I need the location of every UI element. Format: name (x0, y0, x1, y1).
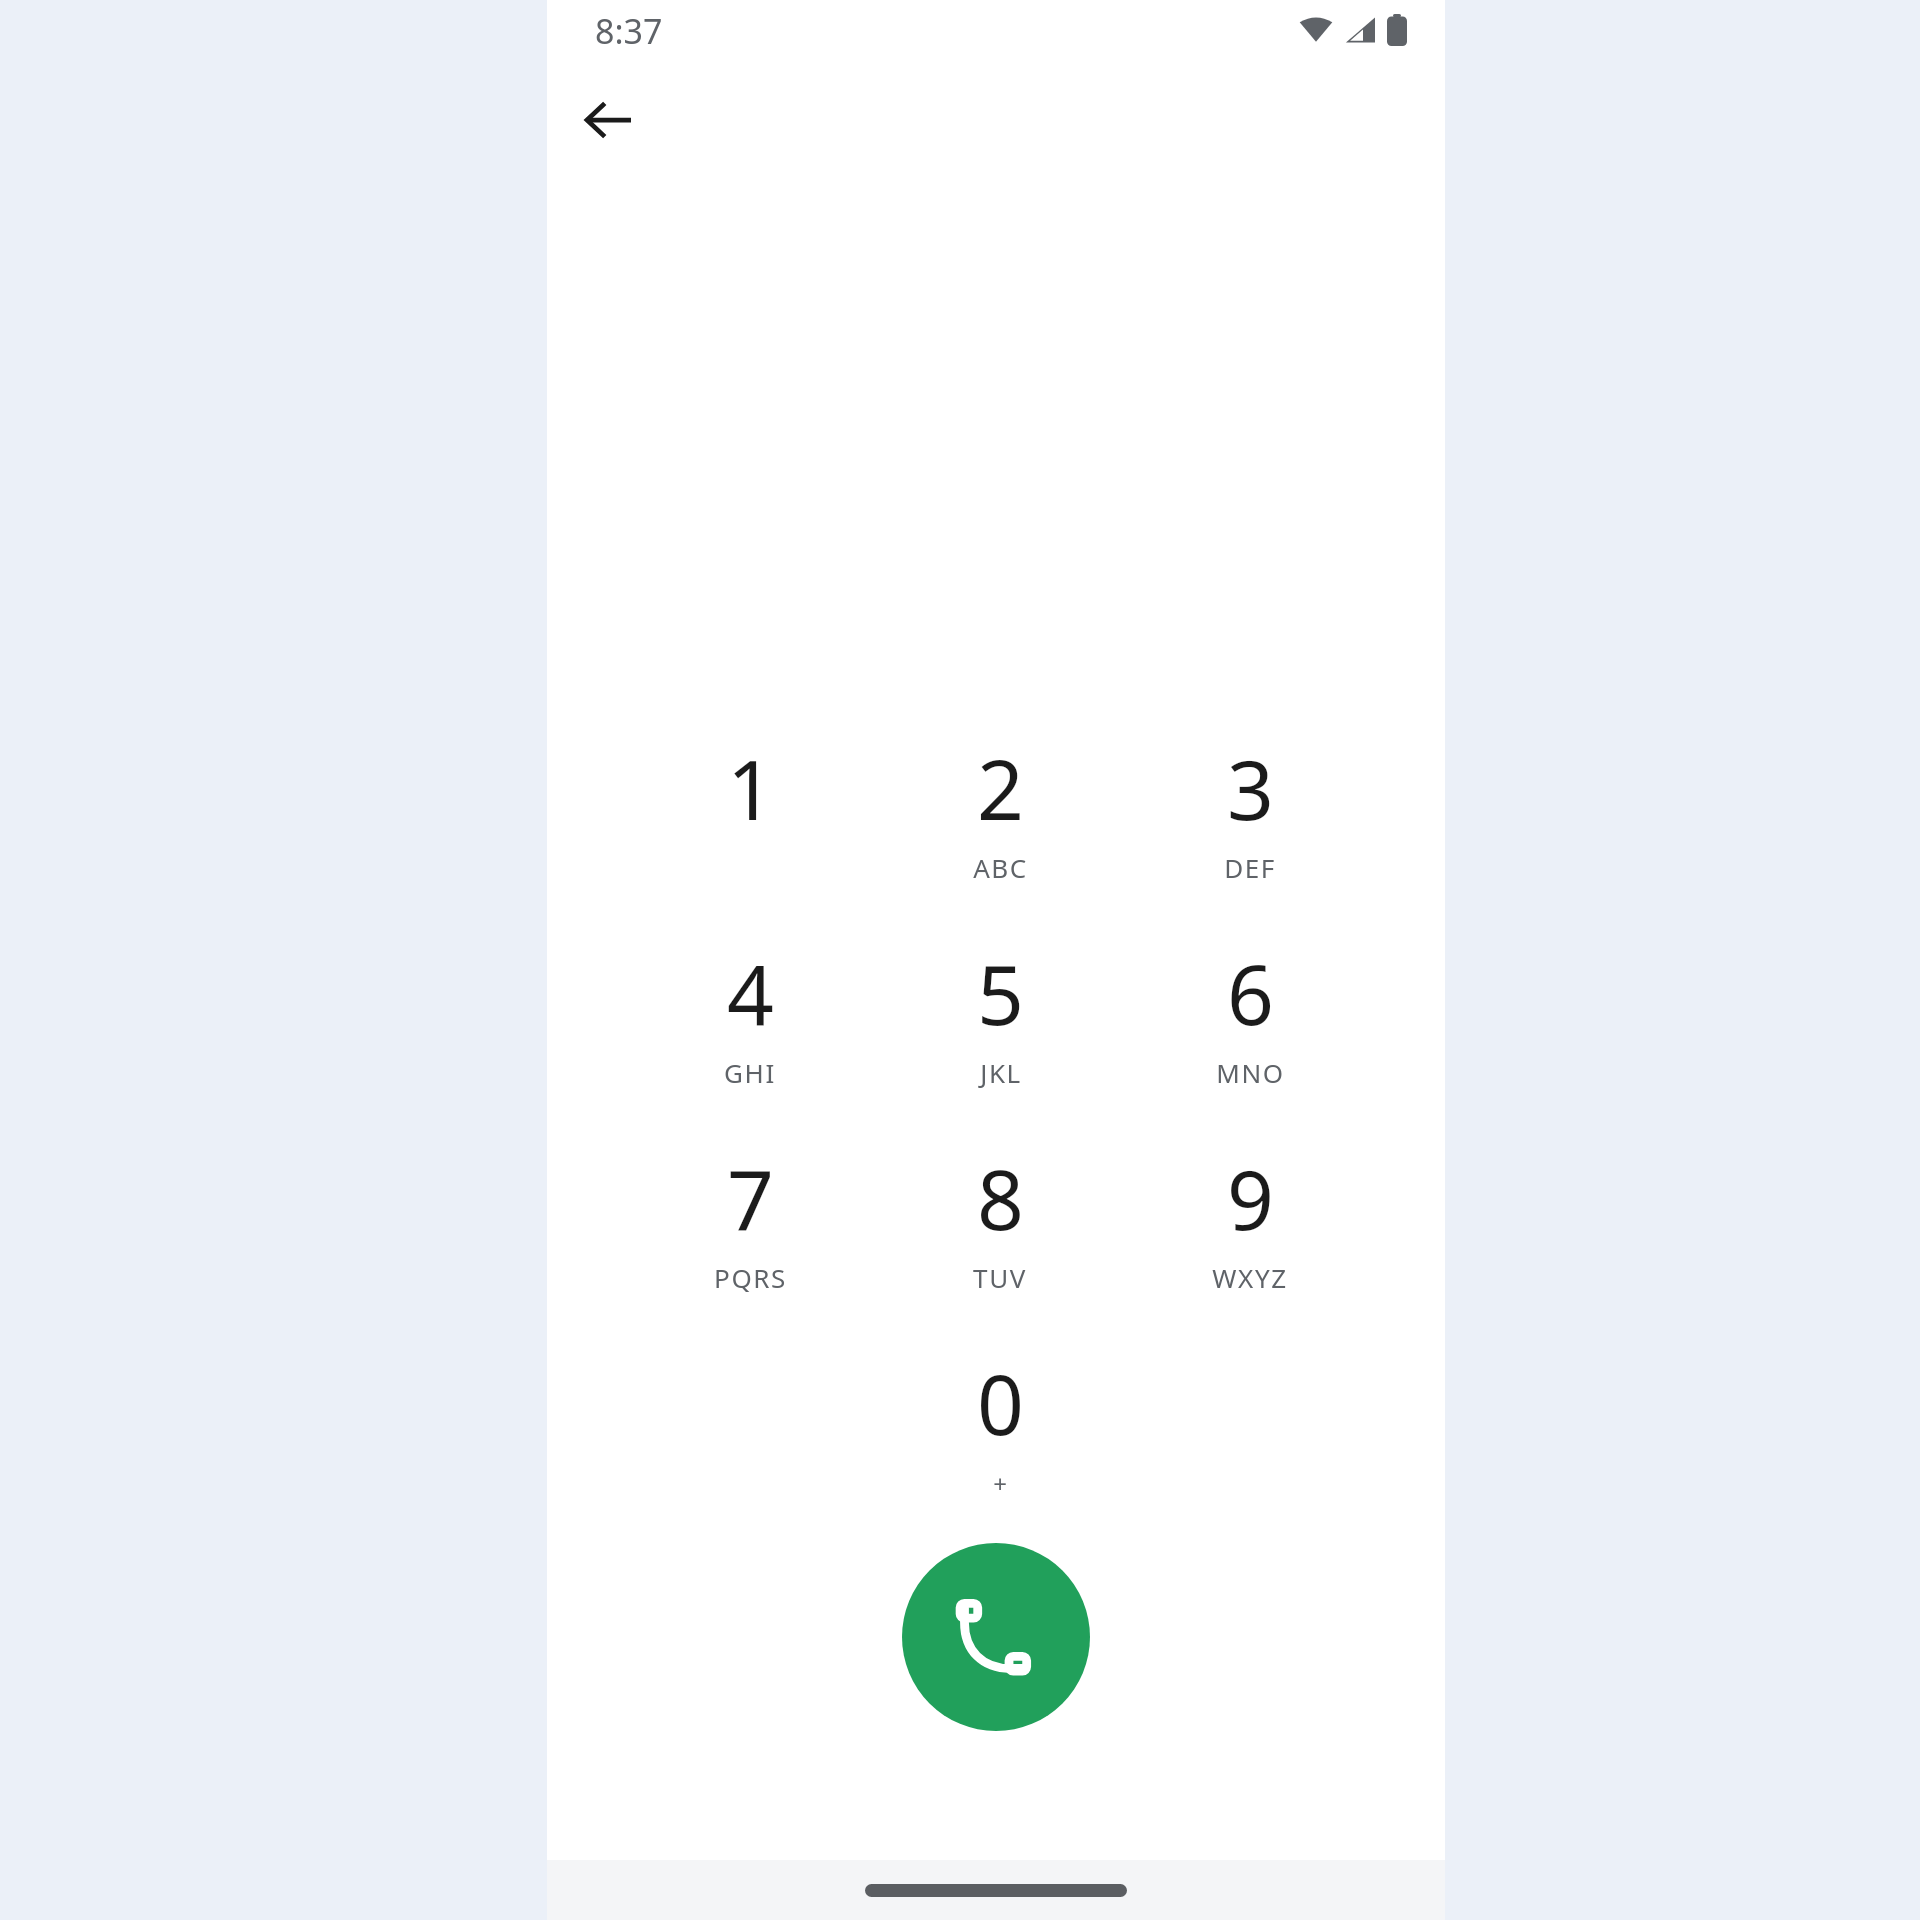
staticText: TUV (973, 1260, 1027, 1295)
button[interactable]: 6 (1125, 927, 1375, 1132)
staticText: 3 (1227, 732, 1274, 844)
staticText: 7 (727, 1142, 774, 1254)
button[interactable]: 3 (1125, 722, 1375, 927)
button[interactable]: 7 (625, 1132, 875, 1337)
staticText: 9 (1227, 1142, 1274, 1254)
button[interactable]: 9 (1125, 1132, 1375, 1337)
staticText: + (993, 1467, 1009, 1500)
button[interactable]: Home (865, 1884, 1127, 1897)
staticText: 2 (977, 732, 1024, 844)
button[interactable]: 8 (875, 1132, 1125, 1337)
staticText: MNO (1216, 1055, 1285, 1090)
staticText: 8 (977, 1142, 1024, 1254)
button[interactable]: 2 (875, 722, 1125, 927)
staticText: 1 (727, 732, 774, 844)
staticText: 6 (1227, 937, 1274, 1049)
staticText: 0 (977, 1347, 1024, 1459)
staticText: JKL (980, 1055, 1022, 1090)
staticText: 8:37 (595, 8, 663, 54)
staticText: GHI (724, 1055, 776, 1090)
button[interactable]: 1 (625, 722, 875, 927)
button[interactable]: Call (902, 1543, 1090, 1731)
staticText: 5 (977, 937, 1024, 1049)
button[interactable]: 5 (875, 927, 1125, 1132)
staticText: WXYZ (1212, 1260, 1288, 1295)
staticText: ABC (973, 850, 1028, 885)
button[interactable]: 4 (625, 927, 875, 1132)
button[interactable]: 0 (875, 1337, 1125, 1542)
staticText: DEF (1224, 850, 1276, 885)
button[interactable]: Back (561, 72, 657, 168)
staticText: PQRS (714, 1260, 787, 1295)
staticText: 4 (727, 937, 774, 1049)
